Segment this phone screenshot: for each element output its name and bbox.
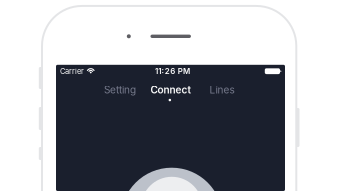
staticText: Setting xyxy=(104,84,136,96)
staticText: Carrier xyxy=(60,67,84,76)
button[interactable]: Lines xyxy=(196,84,247,96)
button[interactable]: Setting xyxy=(94,84,145,96)
staticText: Connect xyxy=(150,84,191,96)
staticText: 11:26 PM xyxy=(155,66,190,76)
staticText: Lines xyxy=(209,84,234,96)
button[interactable]: Connect xyxy=(145,84,196,96)
